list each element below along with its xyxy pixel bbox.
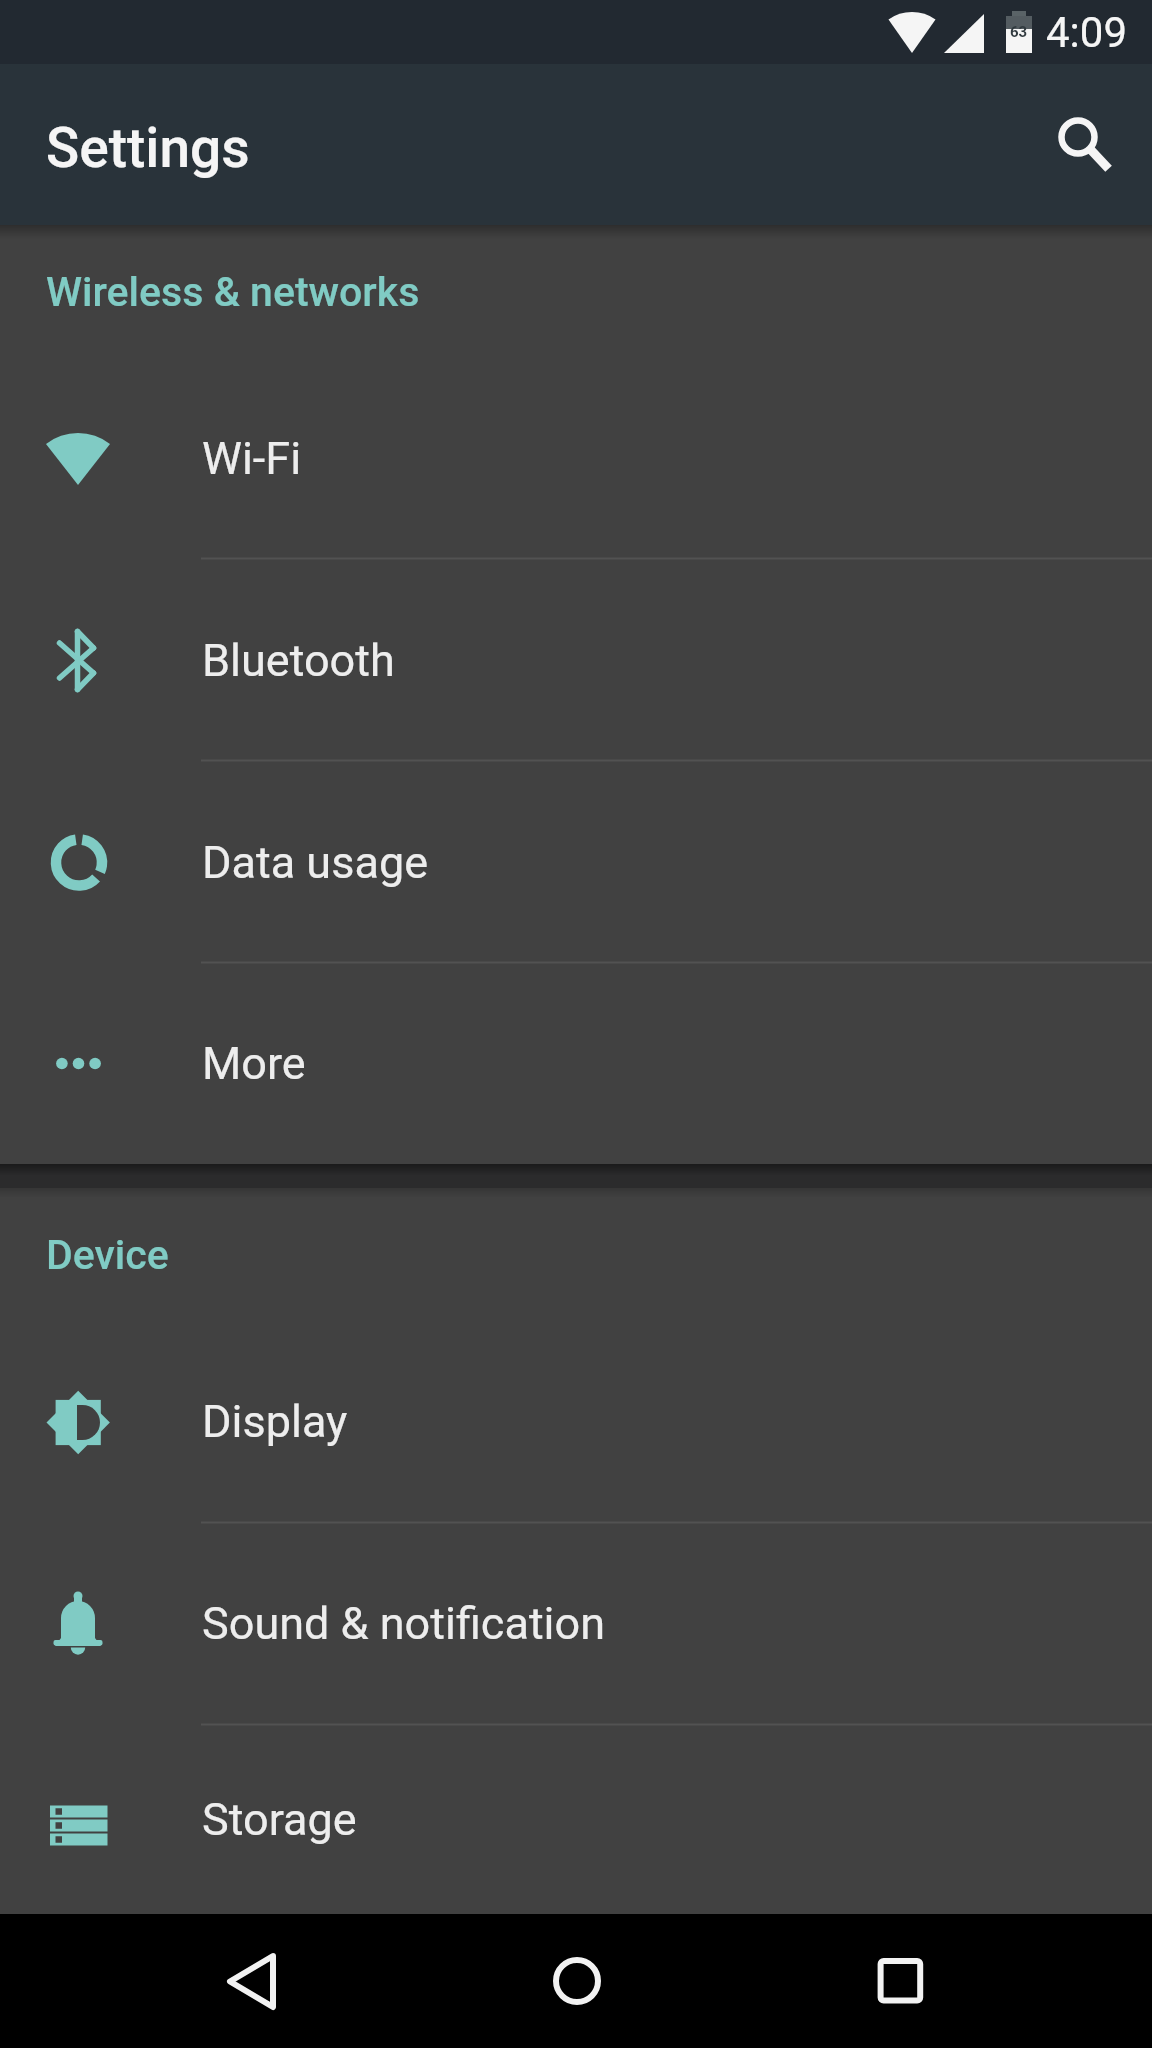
button[interactable] — [501, 1914, 651, 2048]
staticText: Settings — [46, 116, 250, 180]
staticText: Display — [202, 1395, 348, 1448]
staticText: Device — [46, 1231, 169, 1279]
staticText: More — [202, 1037, 306, 1090]
button[interactable]: Bluetooth — [0, 559, 1152, 761]
staticText: Data usage — [202, 836, 429, 889]
button[interactable] — [160, 1914, 310, 2048]
button[interactable]: Data usage — [0, 761, 1152, 963]
staticText: Wireless & networks — [46, 268, 420, 316]
button[interactable] — [825, 1914, 975, 2048]
staticText: 4:09 — [1046, 8, 1127, 57]
staticText: Wi-Fi — [202, 432, 302, 485]
button[interactable]: More — [0, 962, 1152, 1164]
button[interactable]: Wi-Fi — [0, 357, 1152, 559]
staticText: Bluetooth — [202, 634, 395, 687]
staticText: Sound & notification — [202, 1597, 606, 1650]
button[interactable]: Storage — [0, 1724, 1152, 1914]
button[interactable] — [1032, 64, 1152, 225]
button[interactable]: Sound & notification — [0, 1522, 1152, 1724]
button[interactable]: Display — [0, 1320, 1152, 1522]
staticText: 63 — [1010, 23, 1028, 41]
staticText: Storage — [202, 1793, 357, 1846]
